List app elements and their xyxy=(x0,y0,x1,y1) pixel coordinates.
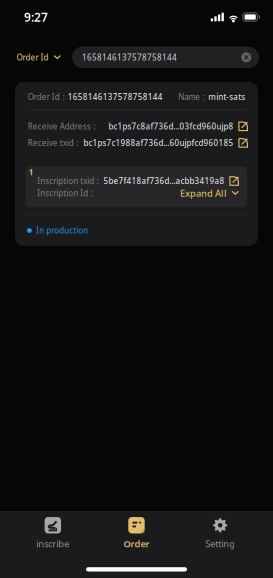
staticText: 5be7f418af736d...acbb3419a8 xyxy=(103,176,224,186)
staticText: Inscription Id xyxy=(37,188,88,198)
button[interactable]: Expand All xyxy=(180,187,239,199)
staticText: bc1ps7c1988af736d...60ujpfcd960185 xyxy=(83,138,233,148)
staticText: bc1ps7c8af736d...03fcd960ujp8 xyxy=(108,121,233,132)
button[interactable]: Open Receive Address xyxy=(233,120,248,133)
button[interactable]: Order Id xyxy=(16,48,61,67)
staticText: Expand All xyxy=(180,187,227,199)
staticText: Order Id xyxy=(28,92,60,102)
staticText: Order xyxy=(123,537,149,550)
staticText: Order Id xyxy=(16,52,48,63)
staticText: 1 xyxy=(29,167,34,177)
staticText: : xyxy=(63,92,65,102)
staticText: In production xyxy=(36,225,88,236)
staticText: : xyxy=(203,92,205,102)
button[interactable]: Clear search xyxy=(241,49,259,65)
staticText: Name xyxy=(178,92,200,102)
button[interactable]: Order xyxy=(95,512,178,557)
staticText: Inscription txid xyxy=(37,176,94,186)
staticText: 1658146137578758144 xyxy=(68,92,163,102)
button[interactable]: inscribe xyxy=(11,512,95,557)
staticText: mint-sats xyxy=(208,92,245,102)
button[interactable]: Setting xyxy=(178,512,262,557)
button[interactable]: Open Inscription txid xyxy=(224,175,239,187)
staticText: : xyxy=(93,121,95,132)
staticText: inscribe xyxy=(36,537,69,550)
staticText: Receive Address xyxy=(28,121,91,132)
staticText: Setting xyxy=(205,537,235,550)
staticText: 1658146137578758144 xyxy=(82,52,177,63)
staticText: : xyxy=(91,188,93,198)
staticText: 9:27 xyxy=(24,9,48,25)
staticText: : xyxy=(97,176,99,186)
staticText: Receive txid xyxy=(28,138,74,148)
button[interactable]: Open Receive txid xyxy=(233,137,248,149)
staticText: : xyxy=(76,138,78,148)
